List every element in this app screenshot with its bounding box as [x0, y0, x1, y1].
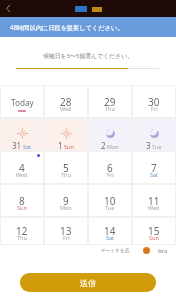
button[interactable]: 1: [44, 118, 88, 151]
staticText: 48時間以内に日程を提案してください。: [10, 23, 124, 31]
staticText: Fri: [63, 234, 70, 241]
button[interactable]: Today: [0, 85, 44, 118]
button[interactable]: 3: [132, 118, 176, 151]
staticText: 10: [104, 194, 116, 208]
staticText: 31: [12, 140, 22, 151]
button[interactable]: 送信: [20, 273, 156, 292]
staticText: Fri: [107, 171, 114, 178]
staticText: Tue: [105, 204, 115, 211]
staticText: Tue: [152, 143, 162, 150]
staticText: 候補日を3〜5個選んでください。: [0, 52, 176, 60]
staticText: 29: [104, 95, 116, 109]
button[interactable]: 13: [44, 217, 88, 245]
button[interactable]: 12: [0, 217, 44, 245]
staticText: Wed: [60, 105, 72, 112]
staticText: 11: [148, 194, 160, 208]
button[interactable]: 11: [132, 184, 176, 217]
staticText: Sun: [17, 204, 27, 211]
button[interactable]: 10: [88, 184, 132, 217]
staticText: 7: [151, 161, 157, 175]
button[interactable]: 6: [88, 151, 132, 184]
button[interactable]: 7: [132, 151, 176, 184]
staticText: 13: [60, 224, 72, 238]
staticText: Thu: [105, 105, 115, 112]
staticText: Fri: [151, 105, 158, 112]
staticText: 1: [58, 140, 63, 151]
staticText: Wed: [148, 204, 160, 211]
staticText: 12: [16, 224, 28, 238]
staticText: 6: [107, 161, 113, 175]
button[interactable]: 29: [88, 85, 132, 118]
button[interactable]: 4: [0, 151, 44, 184]
staticText: 5: [63, 161, 69, 175]
staticText: Today: [11, 97, 34, 108]
button[interactable]: 30: [132, 85, 176, 118]
staticText: Thu: [61, 171, 71, 178]
button[interactable]: 14: [88, 217, 132, 245]
button[interactable]: 8: [0, 184, 44, 217]
staticText: 3: [146, 140, 151, 151]
staticText: 30: [148, 95, 160, 109]
staticText: Sun: [149, 234, 159, 241]
staticText: 2: [101, 140, 106, 151]
staticText: Sun: [64, 143, 74, 150]
button[interactable]: 2: [88, 118, 132, 151]
staticText: Sat: [23, 143, 32, 150]
staticText: ikra: [158, 247, 168, 254]
staticText: Sat: [106, 234, 115, 241]
staticText: 4: [19, 161, 25, 175]
staticText: Mon: [107, 143, 119, 150]
button[interactable]: デートする店: [0, 247, 168, 254]
staticText: 9: [63, 194, 69, 208]
staticText: 送信: [80, 278, 96, 288]
staticText: 15: [148, 224, 160, 238]
button[interactable]: 5: [44, 151, 88, 184]
button[interactable]: 9: [44, 184, 88, 217]
button[interactable]: 15: [132, 217, 176, 245]
staticText: 28: [60, 95, 72, 109]
staticText: Sat: [150, 171, 159, 178]
button[interactable]: 31: [0, 118, 44, 151]
staticText: 8: [19, 194, 25, 208]
staticText: Thu: [17, 234, 27, 241]
button[interactable]: Back: [0, 0, 17, 17]
staticText: デートする店: [101, 248, 129, 254]
staticText: Wed: [16, 171, 28, 178]
staticText: Mon: [60, 204, 72, 211]
staticText: 14: [104, 224, 116, 238]
button[interactable]: 28: [44, 85, 88, 118]
